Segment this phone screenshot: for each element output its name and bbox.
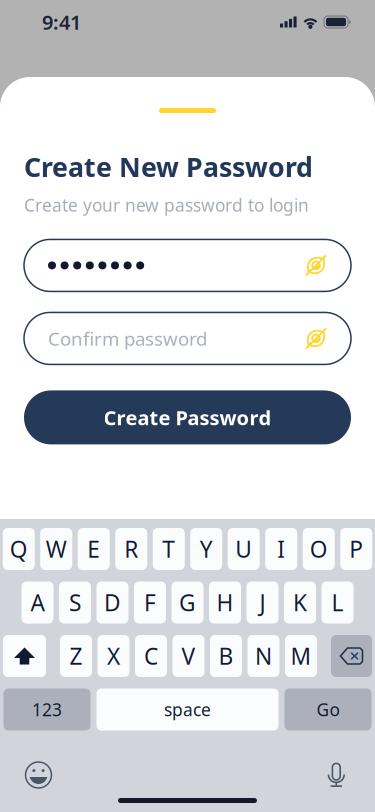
button[interactable]: G	[171, 581, 203, 623]
staticText: K	[293, 587, 307, 617]
staticText: A	[30, 587, 44, 617]
button[interactable]: Shift	[3, 635, 46, 677]
staticText: Confirm password	[48, 326, 207, 351]
button[interactable]: 123	[3, 688, 90, 730]
staticText: W	[46, 534, 67, 564]
staticText: space	[164, 698, 211, 721]
staticText: H	[216, 587, 233, 617]
button[interactable]: M	[285, 635, 317, 677]
staticText: Create your new password to login	[24, 193, 309, 216]
button[interactable]: U	[228, 528, 260, 570]
button[interactable]: X	[97, 635, 129, 677]
button[interactable]: W	[40, 528, 72, 570]
staticText: V	[181, 641, 195, 671]
button[interactable]: Delete	[331, 635, 372, 677]
button[interactable]: O	[303, 528, 335, 570]
staticText: 9:41	[42, 9, 81, 35]
button[interactable]: space	[96, 688, 278, 730]
staticText: E	[87, 534, 100, 564]
staticText: D	[104, 587, 121, 617]
button[interactable]: S	[59, 581, 91, 623]
staticText: M	[290, 641, 311, 671]
button[interactable]: C	[135, 635, 167, 677]
staticText: U	[235, 534, 252, 564]
button[interactable]: Y	[190, 528, 222, 570]
button[interactable]: R	[115, 528, 147, 570]
button[interactable]: V	[172, 635, 204, 677]
staticText: 123	[32, 698, 62, 721]
button[interactable]: Create Password	[24, 390, 351, 444]
button[interactable]: Dictate	[325, 762, 348, 787]
button[interactable]: A	[21, 581, 53, 623]
staticText: F	[144, 587, 156, 617]
button[interactable]: D	[96, 581, 128, 623]
button[interactable]: Q	[3, 528, 35, 570]
staticText: Go	[316, 698, 339, 721]
button[interactable]: Confirm password	[24, 312, 351, 364]
button[interactable]	[24, 239, 351, 291]
button[interactable]: K	[284, 581, 316, 623]
button[interactable]: E	[78, 528, 110, 570]
button[interactable]: I	[265, 528, 297, 570]
staticText: Q	[10, 534, 28, 564]
button[interactable]: T	[153, 528, 185, 570]
button[interactable]: Go	[284, 688, 371, 730]
button[interactable]: N	[247, 635, 279, 677]
staticText: I	[277, 534, 285, 564]
staticText: B	[218, 641, 233, 671]
button[interactable]: Emoji	[25, 761, 52, 788]
button[interactable]: Z	[60, 635, 92, 677]
button[interactable]: H	[209, 581, 241, 623]
staticText: Y	[200, 534, 213, 564]
button[interactable]: F	[134, 581, 166, 623]
button[interactable]: L	[321, 581, 353, 623]
staticText: R	[124, 534, 138, 564]
staticText: Z	[69, 641, 82, 671]
staticText: L	[331, 587, 343, 617]
staticText: X	[107, 641, 120, 671]
button[interactable]: P	[340, 528, 372, 570]
staticText: G	[179, 587, 196, 617]
staticText: T	[162, 534, 175, 564]
staticText: Create New Password	[24, 149, 313, 184]
staticText: C	[144, 641, 158, 671]
staticText: S	[69, 587, 81, 617]
staticText: P	[349, 534, 363, 564]
staticText: Create Password	[103, 404, 271, 431]
staticText: J	[259, 587, 265, 617]
button[interactable]: B	[210, 635, 242, 677]
staticText: O	[310, 534, 328, 564]
button[interactable]: J	[246, 581, 278, 623]
staticText: N	[255, 641, 272, 671]
